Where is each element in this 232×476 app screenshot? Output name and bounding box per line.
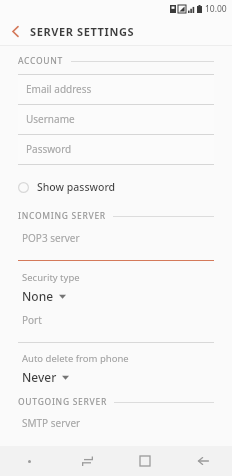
- staticText: POP3 server: [22, 231, 80, 245]
- staticText: None: [22, 288, 54, 304]
- button[interactable]: Show password: [0, 176, 232, 198]
- staticText: INCOMING SERVER: [18, 210, 106, 222]
- button[interactable]: Port: [0, 313, 232, 343]
- staticText: Port: [22, 313, 42, 327]
- button[interactable]: Navigate up: [0, 17, 30, 45]
- staticText: Password: [26, 142, 72, 156]
- staticText: Username: [26, 112, 75, 126]
- staticText: Auto delete from phone: [22, 352, 129, 365]
- staticText: ACCOUNT: [18, 55, 64, 67]
- button[interactable]: Recent apps: [58, 446, 116, 476]
- staticText: SMTP server: [22, 416, 81, 430]
- staticText: Email address: [26, 82, 92, 96]
- button[interactable]: POP3 server: [0, 231, 232, 261]
- staticText: Show password: [37, 180, 116, 194]
- staticText: Security type: [22, 271, 80, 284]
- button[interactable]: Home: [116, 446, 174, 476]
- staticText: SERVER SETTINGS: [30, 24, 135, 39]
- staticText: OUTGOING SERVER: [18, 396, 107, 408]
- button[interactable]: Security type: [0, 271, 232, 304]
- button[interactable]: Password: [18, 135, 214, 164]
- button[interactable]: Username: [18, 105, 214, 134]
- button[interactable]: Menu: [0, 446, 58, 476]
- staticText: Never: [22, 369, 57, 385]
- button[interactable]: Auto delete from phone: [0, 352, 232, 385]
- button[interactable]: Email address: [18, 75, 214, 104]
- button[interactable]: Back: [174, 446, 232, 476]
- staticText: 10.00: [205, 3, 227, 15]
